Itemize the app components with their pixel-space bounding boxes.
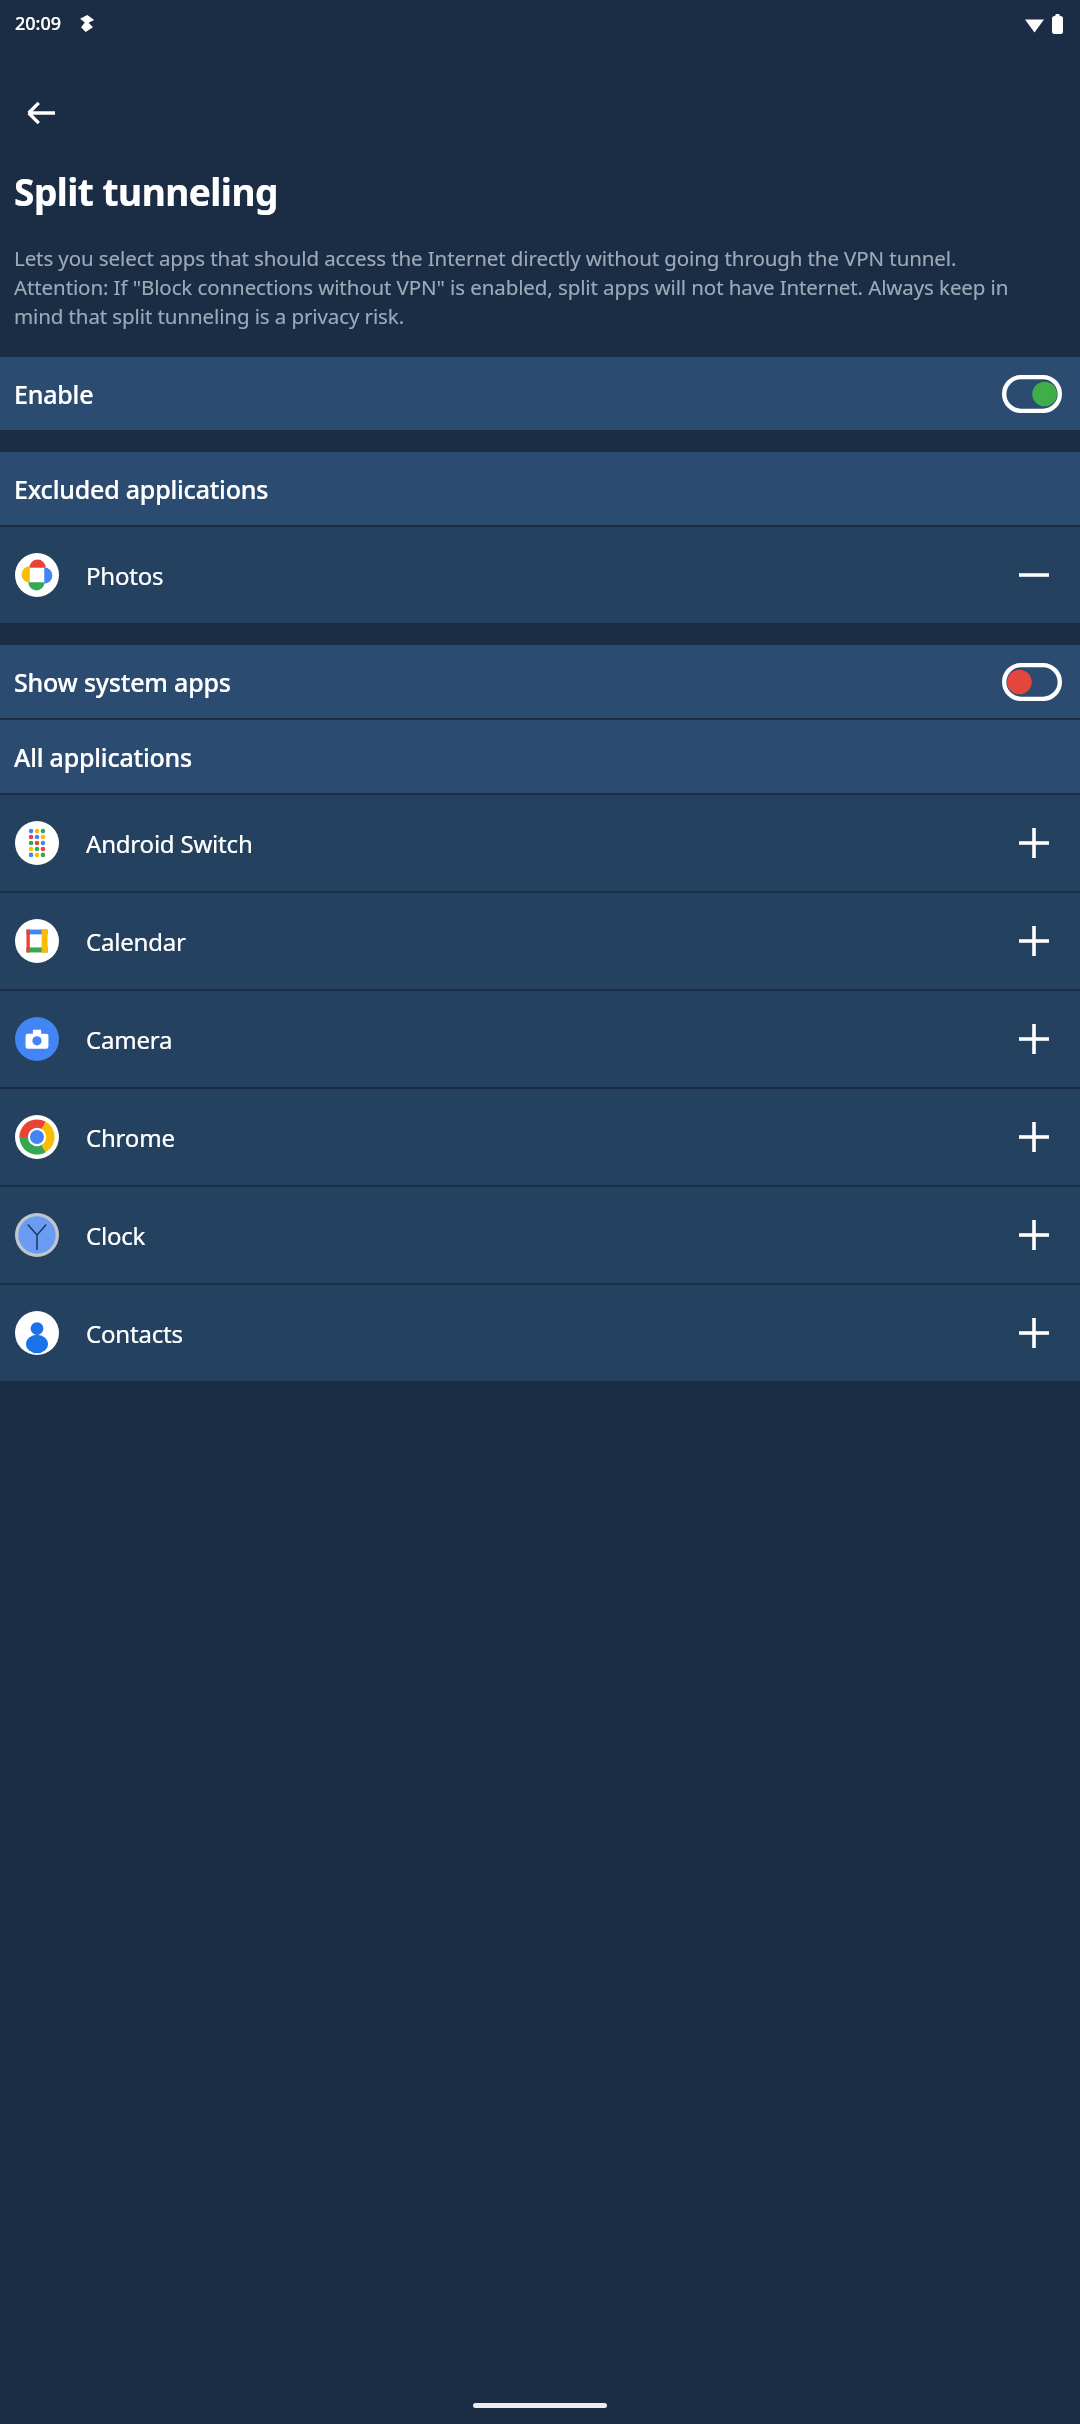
button[interactable]: Remove Photos xyxy=(1010,551,1058,599)
button[interactable]: Calendar xyxy=(0,893,1080,989)
staticText: Contacts xyxy=(86,1317,1010,1350)
staticText: Calendar xyxy=(86,925,1010,958)
staticText: Lets you select apps that should access … xyxy=(14,244,1058,330)
button[interactable]: Photos xyxy=(0,527,1080,623)
button[interactable]: Clock xyxy=(0,1187,1080,1283)
staticText: Show system apps xyxy=(14,665,1002,699)
staticText: Enable xyxy=(14,377,1002,411)
button[interactable]: Show system apps xyxy=(0,645,1080,718)
staticText: All applications xyxy=(14,740,192,774)
button[interactable]: Camera xyxy=(0,991,1080,1087)
button[interactable]: Excluded applications xyxy=(0,452,1080,525)
staticText: Excluded applications xyxy=(14,472,269,506)
button[interactable]: Chrome xyxy=(0,1089,1080,1185)
button[interactable]: Add Calendar xyxy=(1010,917,1058,965)
button[interactable]: Enable xyxy=(0,357,1080,430)
button[interactable]: All applications xyxy=(0,720,1080,793)
staticText: Photos xyxy=(86,559,1010,592)
staticText: Split tunneling xyxy=(14,166,278,216)
staticText: Clock xyxy=(86,1219,1010,1252)
button[interactable]: Android Switch xyxy=(0,795,1080,891)
button[interactable]: Contacts xyxy=(0,1285,1080,1381)
button[interactable]: Add Camera xyxy=(1010,1015,1058,1063)
staticText: 20:09 xyxy=(15,11,62,36)
staticText: Camera xyxy=(86,1023,1010,1056)
staticText: Chrome xyxy=(86,1121,1010,1154)
button[interactable]: Back xyxy=(10,82,72,144)
button[interactable]: Add Android Switch xyxy=(1010,819,1058,867)
button[interactable]: Add Contacts xyxy=(1010,1309,1058,1357)
button[interactable]: Add Clock xyxy=(1010,1211,1058,1259)
staticText: Android Switch xyxy=(86,827,1010,860)
button[interactable]: Add Chrome xyxy=(1010,1113,1058,1161)
